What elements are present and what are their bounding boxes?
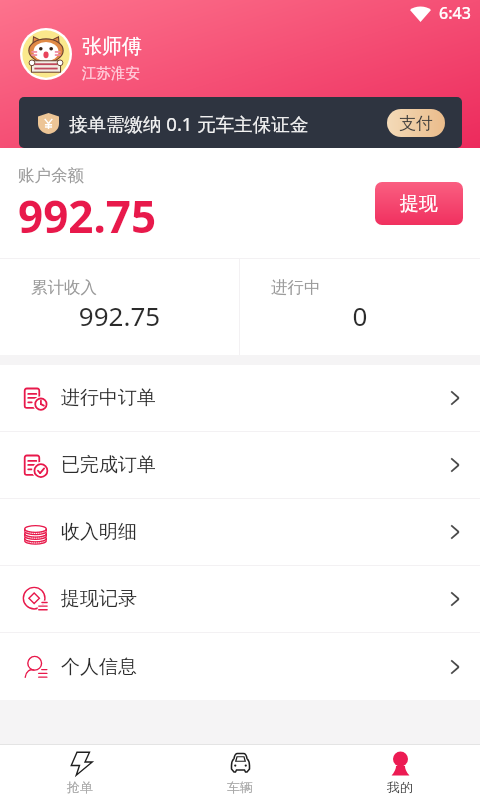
staticText: 接单需缴纳 0.1 元车主保证金 xyxy=(69,111,309,136)
staticText: 6:43 xyxy=(439,2,471,24)
staticText: 张师傅 xyxy=(82,34,142,59)
staticText: 个人信息 xyxy=(61,655,137,679)
button[interactable]: 提现记录 xyxy=(0,566,480,633)
button[interactable]: 车辆 xyxy=(160,745,320,800)
staticText: 我的 xyxy=(387,779,413,795)
staticText: 累计收入 xyxy=(31,277,97,298)
staticText: 江苏淮安 xyxy=(82,64,140,82)
button[interactable]: 支付 xyxy=(387,109,445,137)
button[interactable]: 抢单 xyxy=(0,745,160,800)
staticText: 车辆 xyxy=(227,779,253,795)
staticText: 账户余额 xyxy=(18,165,84,186)
staticText: 支付 xyxy=(399,113,433,134)
button[interactable]: 我的 xyxy=(320,745,480,800)
button[interactable]: 收入明细 xyxy=(0,499,480,566)
staticText: 抢单 xyxy=(67,779,93,795)
staticText: 已完成订单 xyxy=(61,453,156,477)
button[interactable]: 接单需缴纳 0.1 元车主保证金 xyxy=(19,97,462,148)
button[interactable]: 个人信息 xyxy=(0,633,480,700)
staticText: 提现记录 xyxy=(61,587,137,611)
button[interactable]: 进行中订单 xyxy=(0,365,480,432)
staticText: 进行中 xyxy=(271,277,321,298)
staticText: 992.75 xyxy=(18,186,157,246)
button[interactable]: 已完成订单 xyxy=(0,432,480,499)
staticText: 提现 xyxy=(400,192,438,216)
staticText: 992.75 xyxy=(31,298,208,333)
staticText: 0 xyxy=(271,298,449,333)
staticText: 进行中订单 xyxy=(61,386,156,410)
staticText: 收入明细 xyxy=(61,520,137,544)
button[interactable]: 提现 xyxy=(375,182,463,225)
